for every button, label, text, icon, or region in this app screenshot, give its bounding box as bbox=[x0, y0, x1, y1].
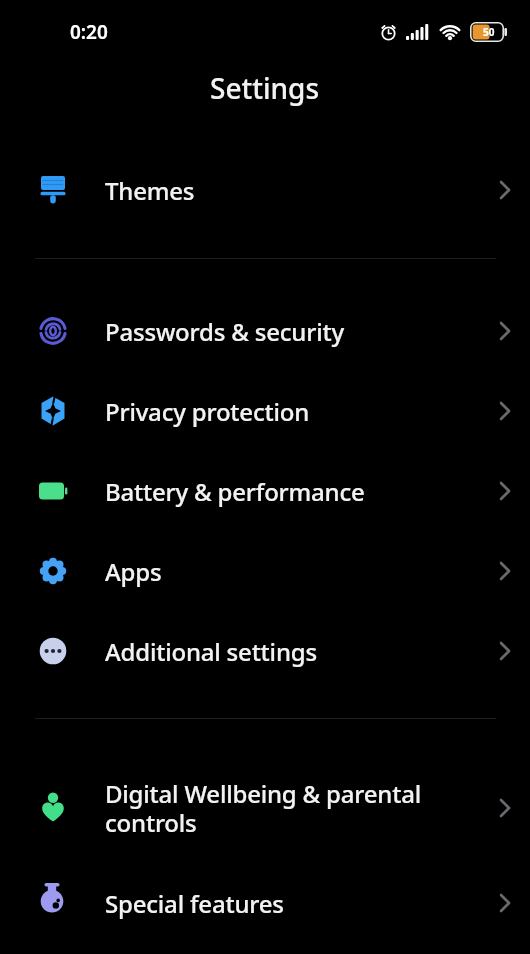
button[interactable]: Privacy protection bbox=[0, 371, 530, 451]
staticText: Digital Wellbeing & parental controls bbox=[105, 777, 500, 839]
staticText: Settings bbox=[210, 69, 320, 107]
staticText: Special features bbox=[105, 887, 500, 920]
button[interactable]: Themes bbox=[0, 150, 530, 230]
button[interactable]: Special features bbox=[0, 863, 530, 943]
button[interactable]: Additional settings bbox=[0, 611, 530, 691]
staticText: Themes bbox=[105, 174, 500, 207]
staticText: Additional settings bbox=[105, 635, 500, 668]
staticText: Privacy protection bbox=[105, 395, 500, 428]
staticText: Passwords & security bbox=[105, 315, 500, 348]
staticText: 0:20 bbox=[70, 19, 108, 45]
button[interactable]: Passwords & security bbox=[0, 291, 530, 371]
staticText: Apps bbox=[105, 555, 500, 588]
button[interactable]: Digital Wellbeing & parental controls bbox=[0, 753, 530, 863]
button[interactable]: Battery & performance bbox=[0, 451, 530, 531]
button[interactable]: Apps bbox=[0, 531, 530, 611]
staticText: 50 bbox=[483, 25, 495, 39]
staticText: Battery & performance bbox=[105, 475, 500, 508]
